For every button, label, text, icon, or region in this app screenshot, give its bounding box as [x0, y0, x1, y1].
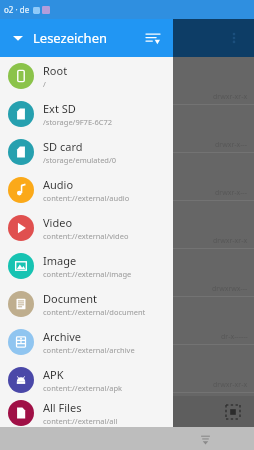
staticText: /storage/emulated/0 — [43, 155, 117, 165]
button[interactable]: drwxr-x--- — [0, 105, 254, 153]
staticText: / — [43, 79, 46, 89]
button[interactable]: Audio — [0, 171, 173, 209]
staticText: drwxr-xr-x — [213, 236, 248, 246]
button[interactable]: dr-x------ — [0, 297, 254, 345]
staticText: All Files — [43, 400, 82, 415]
staticText: Root — [43, 63, 68, 78]
staticText: Image — [43, 253, 77, 268]
staticText: Document — [43, 291, 98, 306]
staticText: drwxrwx--- — [212, 284, 248, 294]
button[interactable]: drwxr-xr-x — [0, 345, 254, 393]
staticText: SD card — [43, 139, 83, 154]
button[interactable]: Image — [0, 247, 173, 285]
button[interactable]: Video — [0, 209, 173, 247]
staticText: Lesezeichen — [33, 29, 108, 47]
staticText: /storage/9F7E-6C72 — [43, 117, 113, 127]
staticText: content://external/archive — [43, 345, 135, 355]
staticText: drwxr-xr-x — [213, 92, 248, 102]
staticText: Audio — [43, 177, 74, 192]
button[interactable]: drwxr-x--- — [0, 153, 254, 201]
button[interactable]: drwxrwx--- — [0, 249, 254, 297]
staticText: drwxr-xr-x — [213, 380, 248, 390]
staticText: APK — [43, 367, 64, 382]
button[interactable]: Ext SD — [0, 95, 173, 133]
button[interactable]: Sort — [138, 23, 168, 53]
staticText: drwxr-x--- — [215, 188, 248, 198]
button[interactable]: Expand — [5, 25, 31, 51]
button[interactable]: Select — [222, 401, 244, 423]
staticText: content://external/apk — [43, 383, 123, 393]
staticText: dr-x------ — [221, 332, 248, 342]
button[interactable]: APK — [0, 361, 173, 399]
staticText: content://external/image — [43, 269, 132, 279]
button[interactable]: Root — [0, 57, 173, 95]
button[interactable]: Document — [0, 285, 173, 323]
button[interactable]: drwxr-xr-x — [0, 57, 254, 105]
staticText: content://external/document — [43, 307, 146, 317]
staticText: Video — [43, 215, 73, 230]
button[interactable]: SD card — [0, 133, 173, 171]
staticText: o2 · de — [4, 4, 30, 15]
staticText: Archive — [43, 329, 82, 344]
staticText: content://external/audio — [43, 193, 130, 203]
button[interactable]: drwxr-xr-x — [0, 201, 254, 249]
staticText: drwxr-x--- — [215, 140, 248, 150]
staticText: content://external/all — [43, 416, 118, 426]
button[interactable]: All Files — [0, 399, 173, 427]
button[interactable]: Hide keyboard — [194, 428, 216, 450]
button[interactable]: Archive — [0, 323, 173, 361]
staticText: Ext SD — [43, 101, 76, 116]
staticText: content://external/video — [43, 231, 129, 241]
